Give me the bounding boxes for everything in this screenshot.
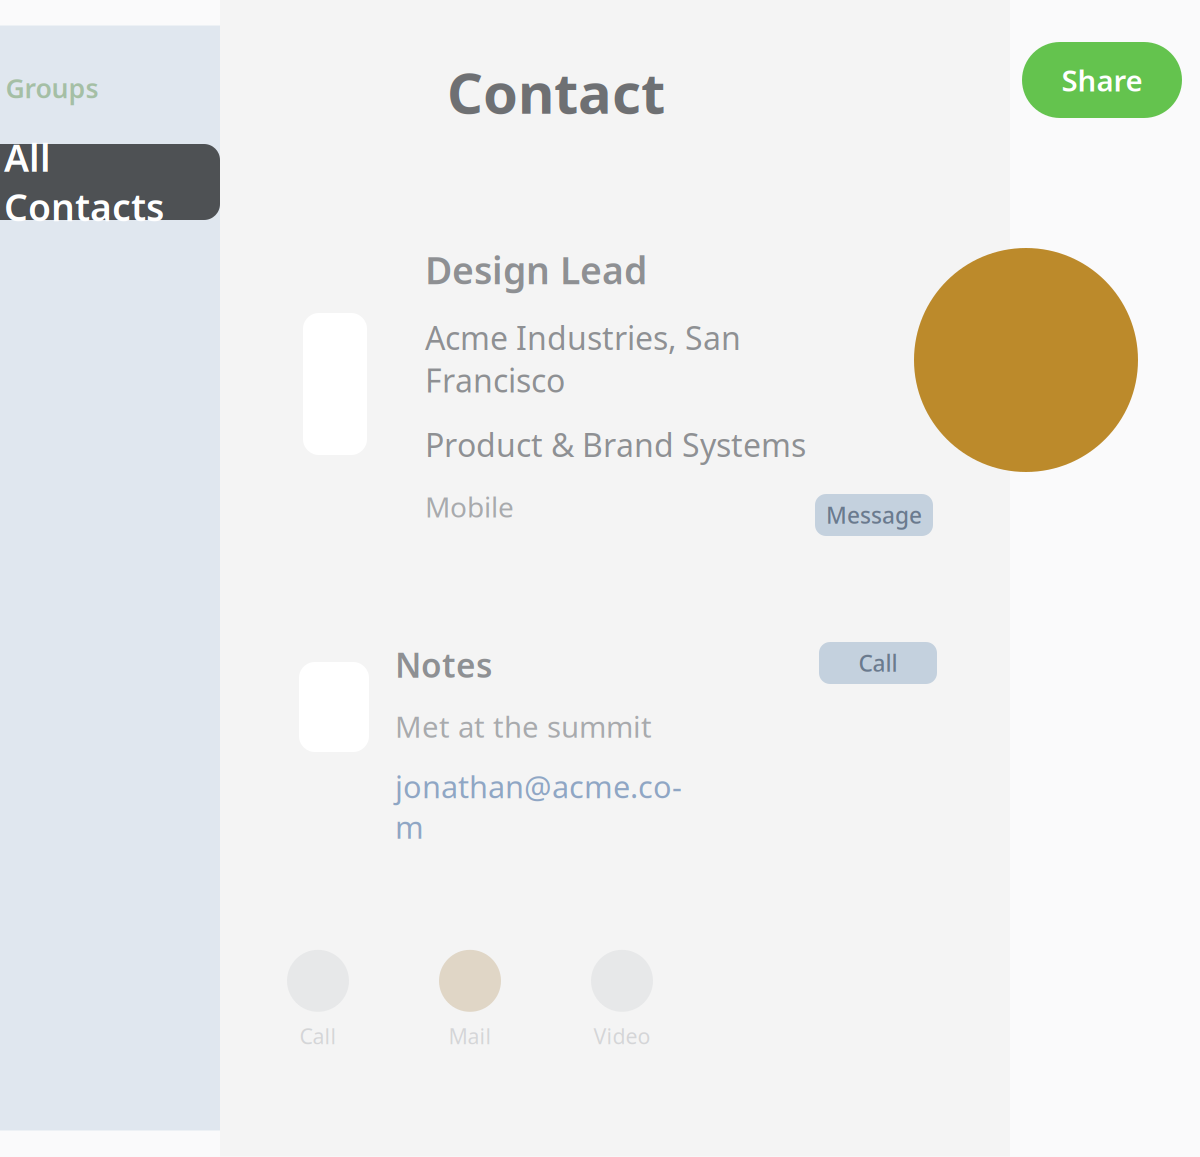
staticText: Share	[1061, 60, 1142, 99]
staticText: All Contacts	[4, 132, 164, 232]
button[interactable]: All Contacts	[0, 144, 220, 220]
staticText: Groups	[5, 70, 98, 106]
button[interactable]: Mail	[439, 950, 501, 1050]
staticText: Video	[593, 1022, 650, 1050]
button[interactable]: Message	[815, 494, 933, 536]
staticText: Acme Industries, San Francisco	[425, 316, 741, 401]
staticText: Contact	[447, 55, 665, 129]
staticText: Met at the summit	[395, 707, 652, 746]
staticText: Call	[299, 1022, 336, 1050]
button[interactable]: Call	[819, 642, 937, 684]
button[interactable]: Video	[591, 950, 653, 1050]
staticText: jonathan@acme.com	[395, 766, 682, 847]
staticText: Mobile	[425, 488, 514, 525]
staticText: Call	[858, 648, 897, 678]
staticText: Message	[826, 500, 922, 530]
staticText: Product & Brand Systems	[425, 423, 806, 466]
button[interactable]: Share	[1022, 42, 1182, 118]
staticText: Notes	[395, 643, 492, 687]
button[interactable]: Call	[287, 950, 349, 1050]
staticText: Design Lead	[425, 245, 647, 294]
staticText: Mail	[448, 1022, 491, 1050]
